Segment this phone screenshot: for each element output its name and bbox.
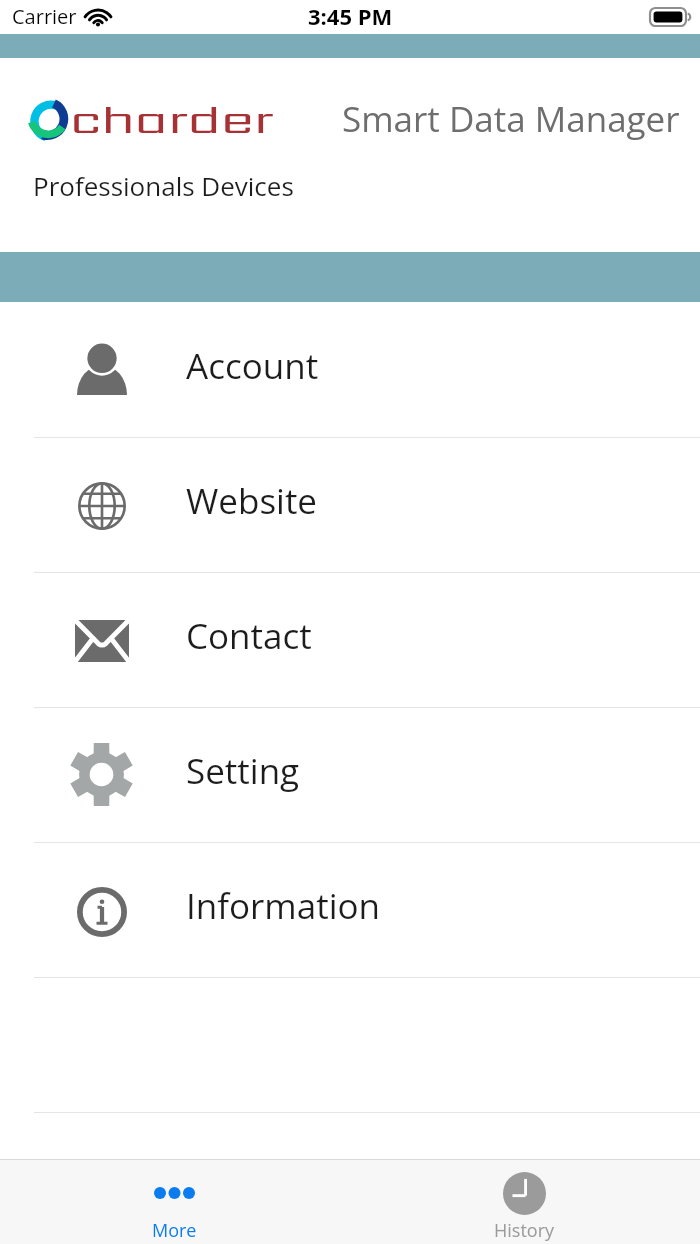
staticText: Setting [186, 747, 300, 795]
button[interactable]: Setting [0, 708, 700, 843]
staticText: Information [186, 882, 381, 930]
staticText: Contact [186, 612, 312, 660]
staticText: Carrier [12, 3, 77, 30]
staticText: History [494, 1218, 555, 1243]
button[interactable]: Website [0, 438, 700, 573]
button[interactable]: More [0, 1160, 350, 1244]
button[interactable]: Contact [0, 573, 700, 708]
staticText: Account [186, 342, 319, 390]
button[interactable]: Information [0, 843, 700, 978]
staticText: charder [70, 93, 274, 146]
staticText: 3:45 PM [308, 1, 393, 31]
staticText: Professionals Devices [33, 168, 294, 203]
staticText: Smart Data Manager [342, 95, 680, 143]
staticText: More [152, 1218, 197, 1243]
button[interactable]: Account [0, 303, 700, 438]
staticText: Website [186, 477, 318, 525]
button[interactable]: History [350, 1160, 700, 1244]
